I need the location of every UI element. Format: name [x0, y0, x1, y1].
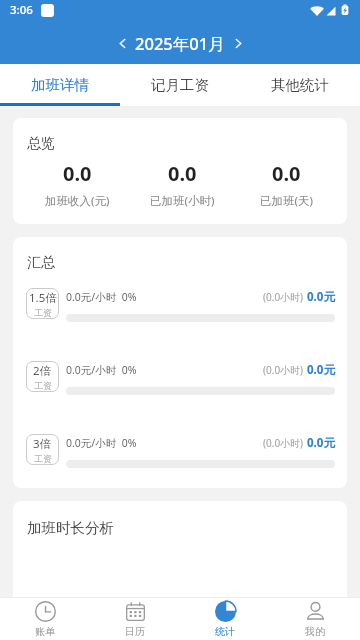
staticText: 0.0	[168, 160, 197, 187]
button[interactable]: 账单	[0, 601, 90, 638]
staticText: 2倍	[33, 363, 52, 379]
staticText: 汇总	[27, 254, 55, 272]
button[interactable]: 日历	[90, 601, 180, 638]
staticText: 加班时长分析	[27, 519, 114, 537]
staticText: 3:06	[10, 2, 33, 18]
staticText: 0.0元	[307, 289, 335, 305]
staticText: 我的	[305, 625, 325, 638]
staticText: 统计	[215, 625, 235, 638]
staticText: 工资	[34, 307, 52, 318]
staticText: 加班详情	[31, 76, 89, 94]
staticText: 已加班(小时)	[150, 193, 215, 209]
staticText: (0.0小时)	[263, 363, 304, 377]
staticText: 0.0元/小时 0%	[66, 363, 137, 377]
staticText: 加班收入(元)	[45, 193, 110, 209]
button[interactable]: 加班详情	[0, 64, 120, 106]
staticText: 0.0元/小时 0%	[66, 436, 137, 450]
staticText: 0.0元	[307, 435, 335, 451]
button[interactable]: Next month	[225, 30, 251, 56]
button[interactable]: 记月工资	[120, 64, 240, 106]
staticText: 工资	[34, 380, 52, 391]
staticText: 账单	[35, 625, 55, 638]
staticText: (0.0小时)	[263, 436, 304, 450]
button[interactable]: 我的	[270, 601, 360, 638]
button[interactable]: Previous month	[109, 30, 135, 56]
staticText: (0.0小时)	[263, 290, 304, 304]
staticText: 0.0	[63, 160, 92, 187]
staticText: 已加班(天)	[260, 193, 313, 209]
staticText: 2025年01月	[135, 32, 225, 55]
staticText: 3倍	[33, 436, 52, 452]
staticText: 0.0	[272, 160, 301, 187]
button[interactable]: 统计	[180, 601, 270, 638]
staticText: 1.5倍	[29, 290, 57, 306]
staticText: 0.0元	[307, 362, 335, 378]
staticText: 日历	[125, 625, 145, 638]
staticText: 工资	[34, 453, 52, 464]
button[interactable]: 其他统计	[240, 64, 360, 106]
staticText: 总览	[27, 135, 55, 153]
staticText: 记月工资	[151, 76, 209, 94]
staticText: 其他统计	[271, 76, 329, 94]
staticText: 0.0元/小时 0%	[66, 290, 137, 304]
